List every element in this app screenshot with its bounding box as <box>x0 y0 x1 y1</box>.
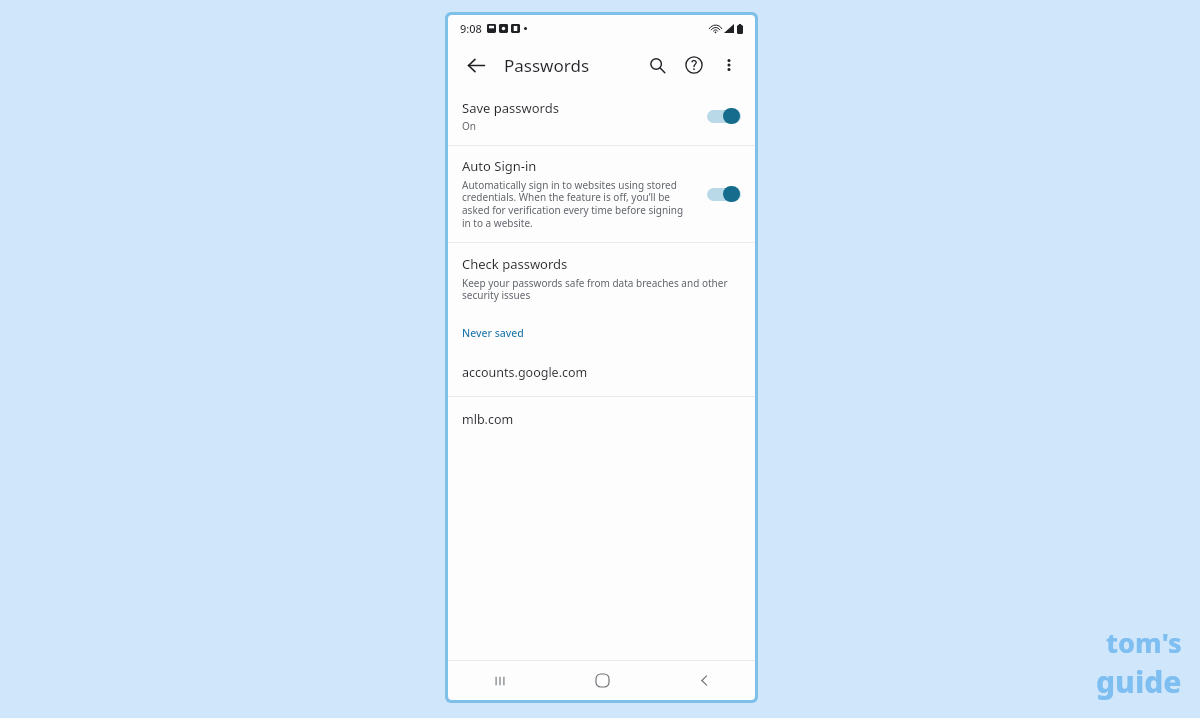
staticText: On <box>462 119 476 133</box>
button[interactable]: Save passwords <box>448 88 755 145</box>
staticText: Automatically sign in to websites using … <box>462 178 693 230</box>
staticText: 9:08 <box>460 21 482 36</box>
staticText: Never saved <box>462 326 524 340</box>
button[interactable]: Search <box>642 50 672 80</box>
staticText: tom's <box>1106 624 1182 661</box>
staticText: Check passwords <box>462 255 568 273</box>
button[interactable]: Home <box>551 661 653 700</box>
staticText: mlb.com <box>462 411 514 428</box>
button[interactable]: Back <box>462 51 490 79</box>
button[interactable]: accounts.google.com <box>448 350 755 396</box>
button[interactable]: More options <box>715 51 743 79</box>
staticText: accounts.google.com <box>462 364 588 381</box>
staticText: Keep your passwords safe from data breac… <box>462 276 735 302</box>
button[interactable]: Check passwords <box>448 243 755 316</box>
button[interactable]: Auto Sign-in <box>448 146 755 242</box>
button[interactable]: mlb.com <box>448 397 755 443</box>
staticText: Auto Sign-in <box>462 157 537 175</box>
staticText: guide <box>1096 661 1182 702</box>
staticText: Passwords <box>504 54 590 77</box>
button[interactable]: Help <box>679 50 709 80</box>
button[interactable]: Recent apps <box>448 661 551 700</box>
staticText: Save passwords <box>462 99 559 117</box>
button[interactable]: Back <box>653 661 755 700</box>
